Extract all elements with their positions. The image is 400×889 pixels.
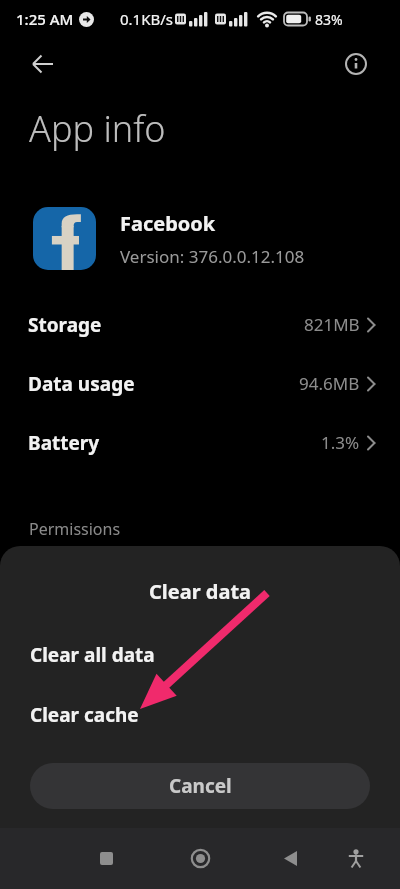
button[interactable]: [27, 47, 61, 81]
button[interactable]: Storage: [28, 295, 376, 354]
staticText: Facebook: [120, 210, 216, 237]
button[interactable]: [180, 838, 220, 878]
staticText: 821MB: [304, 313, 360, 336]
staticText: Version: 376.0.0.12.108: [120, 245, 305, 268]
staticText: Battery: [28, 430, 100, 456]
button[interactable]: Data usage: [28, 354, 376, 413]
staticText: 0.1KB/s: [120, 9, 173, 29]
button[interactable]: Facebook: [33, 207, 400, 270]
button[interactable]: Battery: [28, 413, 376, 472]
staticText: Clear cache: [30, 702, 139, 728]
staticText: Cancel: [169, 773, 232, 799]
staticText: Permissions: [29, 518, 121, 540]
button[interactable]: [86, 838, 126, 878]
button[interactable]: [336, 838, 376, 878]
button[interactable]: Clear cache: [0, 695, 400, 735]
button[interactable]: Clear all data: [0, 635, 400, 675]
staticText: Clear all data: [30, 642, 155, 668]
staticText: App info: [29, 104, 166, 153]
staticText: 94.6MB: [299, 372, 360, 395]
staticText: Data usage: [28, 371, 135, 397]
staticText: Storage: [28, 312, 102, 338]
button[interactable]: [270, 838, 310, 878]
staticText: 1.3%: [321, 431, 360, 454]
button[interactable]: [339, 47, 373, 81]
staticText: Clear data: [0, 578, 400, 605]
staticText: 83%: [315, 10, 343, 29]
staticText: 1:25 AM: [16, 9, 74, 29]
button[interactable]: Cancel: [30, 763, 370, 809]
